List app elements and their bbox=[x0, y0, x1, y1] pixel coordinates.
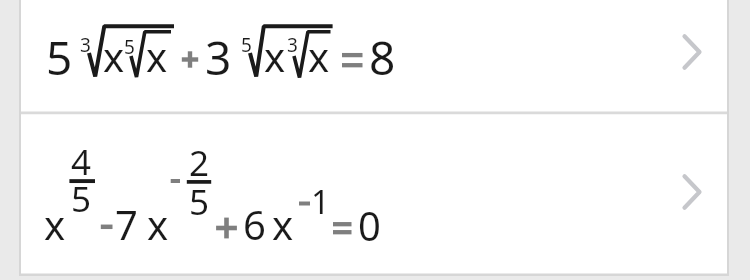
staticText: 1 bbox=[311, 179, 330, 224]
staticText: 2 bbox=[189, 139, 210, 187]
staticText: 5 bbox=[189, 178, 210, 226]
staticText: 5 bbox=[46, 26, 73, 89]
staticText: x bbox=[44, 197, 66, 251]
button[interactable] bbox=[21, 114, 727, 274]
staticText: x bbox=[308, 29, 330, 83]
button[interactable] bbox=[21, 0, 727, 112]
staticText: x bbox=[147, 197, 169, 251]
staticText: x bbox=[272, 197, 294, 251]
staticText: 7 bbox=[115, 197, 138, 251]
staticText: 3 bbox=[80, 32, 91, 58]
staticText: x bbox=[103, 29, 125, 83]
staticText: 3 bbox=[287, 32, 298, 58]
staticText: 4 bbox=[71, 138, 92, 186]
staticText: 6 bbox=[243, 197, 266, 251]
staticText: x bbox=[146, 29, 168, 83]
staticText: 3 bbox=[205, 26, 232, 89]
staticText: 5 bbox=[124, 34, 135, 60]
staticText: x bbox=[264, 29, 286, 83]
staticText: 8 bbox=[369, 26, 396, 89]
staticText: 5 bbox=[71, 175, 92, 223]
staticText: 5 bbox=[241, 32, 252, 58]
staticText: 0 bbox=[358, 198, 381, 252]
